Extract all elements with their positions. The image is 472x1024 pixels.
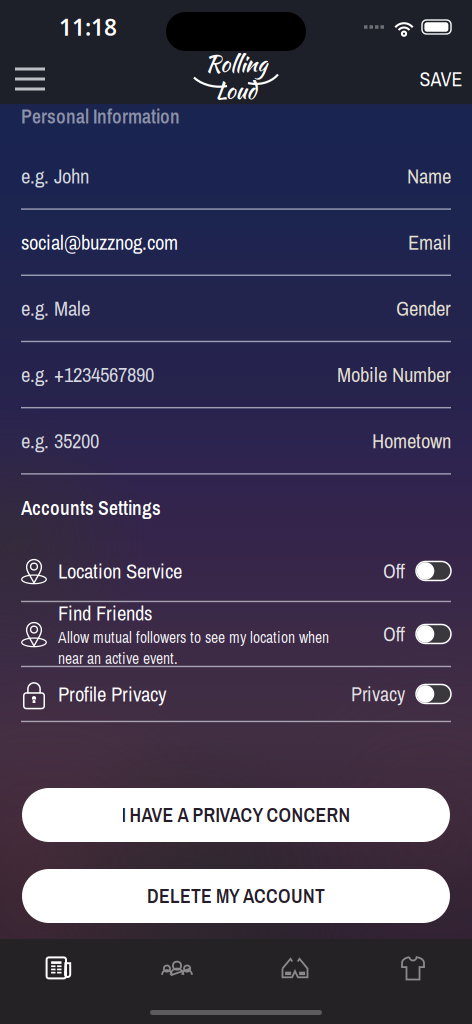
staticText: Loud xyxy=(215,74,256,107)
button[interactable]: e.g. +1234567890 xyxy=(0,342,472,408)
staticText: Privacy xyxy=(351,680,405,707)
staticText: Accounts Settings xyxy=(21,495,161,521)
staticText: Rolling xyxy=(205,47,267,80)
button[interactable]: DELETE MY ACCOUNT xyxy=(22,869,450,923)
button[interactable]: e.g. 35200 xyxy=(0,408,472,475)
staticText: Off xyxy=(383,620,405,647)
staticText: Find Friends xyxy=(58,599,152,627)
staticText: e.g. Male xyxy=(21,294,90,322)
staticText: Off xyxy=(383,557,405,584)
staticText: e.g. 35200 xyxy=(21,427,99,455)
staticText: Name xyxy=(407,162,451,190)
staticText: e.g. +1234567890 xyxy=(21,361,154,388)
button[interactable]: social@buzznog.com xyxy=(0,210,472,276)
button[interactable]: Profile Privacy xyxy=(0,667,472,722)
button[interactable]: e.g. John xyxy=(0,144,472,210)
staticText: Location Service xyxy=(58,557,182,585)
button[interactable]: Friends xyxy=(118,960,236,975)
staticText: Gender xyxy=(396,294,451,322)
staticText: Personal Information xyxy=(21,103,180,130)
button[interactable]: Location Service xyxy=(0,541,472,602)
button[interactable]: SAVE xyxy=(402,54,472,104)
staticText: Hometown xyxy=(372,427,451,455)
staticText: I HAVE A PRIVACY CONCERN xyxy=(121,802,350,828)
staticText: social@buzznog.com xyxy=(21,228,178,256)
button[interactable]: Menu xyxy=(0,54,70,104)
button[interactable]: Find Friends xyxy=(0,602,472,667)
button[interactable]: Feed xyxy=(0,957,118,979)
staticText: Email xyxy=(408,228,451,256)
button[interactable]: Merch xyxy=(354,955,472,980)
staticText: e.g. John xyxy=(21,162,89,190)
staticText: SAVE xyxy=(419,65,462,92)
staticText: Allow mutual followers to see my locatio… xyxy=(58,627,329,669)
staticText: Profile Privacy xyxy=(58,680,166,708)
button[interactable]: I HAVE A PRIVACY CONCERN xyxy=(22,788,450,842)
button[interactable]: e.g. Male xyxy=(0,276,472,342)
staticText: DELETE MY ACCOUNT xyxy=(147,883,325,909)
button[interactable]: Experience xyxy=(236,957,354,978)
staticText: Mobile Number xyxy=(337,361,451,388)
staticText: 11:18 xyxy=(59,12,117,42)
